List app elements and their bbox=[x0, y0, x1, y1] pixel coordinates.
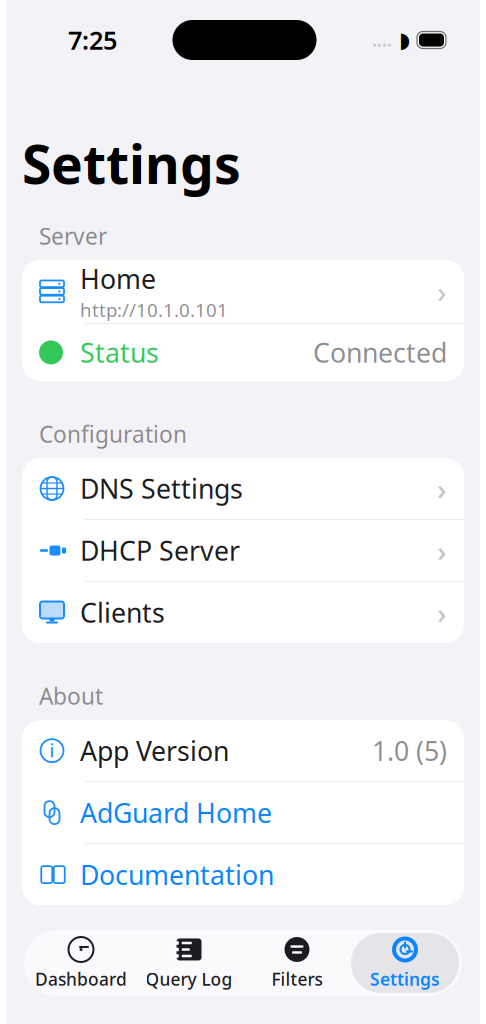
button[interactable]: Home bbox=[22, 260, 464, 323]
staticText: Filters bbox=[271, 967, 322, 990]
staticText: Settings bbox=[22, 128, 241, 199]
staticText: About bbox=[39, 681, 103, 711]
staticText: Settings bbox=[370, 967, 440, 990]
staticText: › bbox=[437, 272, 447, 311]
staticText: Connected bbox=[313, 335, 447, 370]
button[interactable]: Documentation bbox=[22, 844, 464, 905]
staticText: Server bbox=[39, 221, 107, 251]
staticText: Documentation bbox=[80, 857, 274, 892]
button[interactable]: DHCP Server bbox=[22, 520, 464, 581]
staticText: › bbox=[437, 469, 447, 508]
staticText: i bbox=[49, 739, 54, 762]
staticText: http://10.1.0.101 bbox=[80, 297, 228, 322]
staticText: 1.0 (5) bbox=[372, 733, 447, 768]
button[interactable]: DNS Settings bbox=[22, 458, 464, 519]
staticText: › bbox=[437, 593, 447, 632]
button[interactable]: Clients bbox=[22, 582, 464, 643]
staticText: DHCP Server bbox=[80, 533, 240, 568]
staticText: › bbox=[437, 531, 447, 570]
staticText: App Version bbox=[80, 733, 229, 768]
staticText: DNS Settings bbox=[80, 471, 243, 506]
button[interactable]: Dashboard bbox=[27, 933, 135, 993]
staticText: AdGuard Home bbox=[80, 795, 272, 830]
staticText: Configuration bbox=[39, 419, 187, 449]
staticText: Query Log bbox=[145, 967, 232, 990]
staticText: Clients bbox=[80, 595, 165, 630]
staticText: Home bbox=[80, 261, 156, 296]
button[interactable]: Settings bbox=[351, 933, 459, 993]
staticText: 7:25 bbox=[68, 23, 117, 57]
staticText: Dashboard bbox=[35, 967, 127, 990]
button[interactable]: Query Log bbox=[135, 933, 243, 993]
staticText: ◗ bbox=[399, 28, 410, 52]
button[interactable]: Filters bbox=[243, 933, 351, 993]
staticText: Status bbox=[80, 335, 159, 370]
button[interactable]: AdGuard Home bbox=[22, 782, 464, 843]
staticText: .... bbox=[372, 28, 392, 51]
